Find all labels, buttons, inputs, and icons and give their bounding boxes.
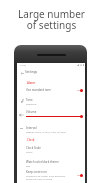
- staticText: Large number of settings: [0, 7, 103, 32]
- staticText: Watch color/dark theme: [26, 160, 59, 164]
- staticText: Clock Scale: [26, 146, 41, 150]
- staticText: Red: [26, 164, 31, 167]
- staticText: Interval: [26, 126, 37, 130]
- button[interactable]: Use standard tone: [26, 88, 83, 92]
- staticText: Alarm: [27, 81, 36, 85]
- staticText: Volume: [26, 110, 37, 114]
- button[interactable]: Back: [18, 69, 26, 77]
- staticText: Starts: [26, 150, 33, 153]
- staticText: Repeat Alarm, 5 Mins, Turn on flash: [26, 130, 66, 133]
- button[interactable]: Keep screen on: [26, 170, 83, 180]
- staticText: Use standard tone: [26, 88, 51, 92]
- staticText: Clock: [27, 138, 35, 142]
- staticText: Tone: [26, 98, 33, 102]
- staticText: Settings: [25, 70, 38, 74]
- staticText: 12:30: [20, 64, 26, 67]
- staticText: Prevents the screen from dimming while t…: [26, 174, 65, 180]
- staticText: Radiance: [26, 102, 37, 105]
- staticText: Keep screen on: [26, 170, 47, 174]
